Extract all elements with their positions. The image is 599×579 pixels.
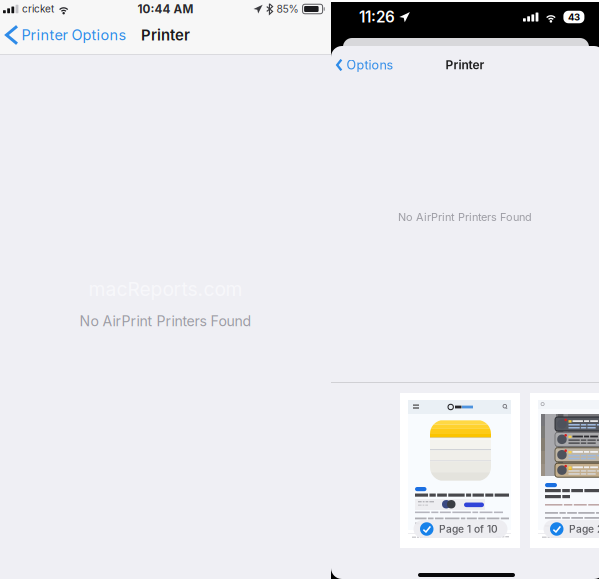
staticText: Page 2 of 10 (569, 523, 599, 535)
staticText: Printer (141, 26, 190, 44)
button[interactable]: Options (331, 50, 401, 80)
staticText: Options (346, 57, 393, 73)
staticText: Printer (445, 58, 484, 72)
staticText: 43 (568, 11, 580, 23)
button[interactable]: Printer Options (0, 17, 134, 53)
staticText: No AirPrint Printers Found (79, 312, 251, 330)
staticText: Printer Options (21, 26, 126, 44)
staticText: 10:44 AM (137, 2, 193, 16)
staticText: Page 1 of 10 (439, 523, 498, 535)
staticText: cricket (22, 3, 54, 15)
staticText: 11:26 (359, 8, 395, 26)
staticText: No AirPrint Printers Found (398, 210, 532, 223)
staticText: 85% (277, 3, 299, 15)
